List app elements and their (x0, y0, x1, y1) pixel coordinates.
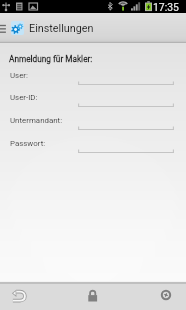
button[interactable]: Passwort: (78, 142, 174, 155)
button[interactable]: Navigation (0, 13, 9, 43)
button[interactable]: User-ID: (78, 96, 174, 109)
button[interactable]: App icon (11, 21, 24, 35)
button[interactable]: Lock (85, 287, 101, 303)
button[interactable]: User: (78, 74, 174, 87)
staticText: Anmeldung für Makler: (9, 54, 93, 64)
staticText: Passwort: (10, 139, 46, 148)
staticText: Einstellungen (29, 22, 94, 35)
staticText: 17:35 (153, 1, 179, 13)
button[interactable]: Menu (158, 287, 174, 303)
staticText: User-ID: (10, 93, 38, 102)
staticText: User: (10, 71, 28, 80)
button[interactable]: Back (11, 287, 27, 303)
staticText: Untermandant: (10, 116, 63, 125)
button[interactable]: Untermandant: (78, 119, 174, 132)
